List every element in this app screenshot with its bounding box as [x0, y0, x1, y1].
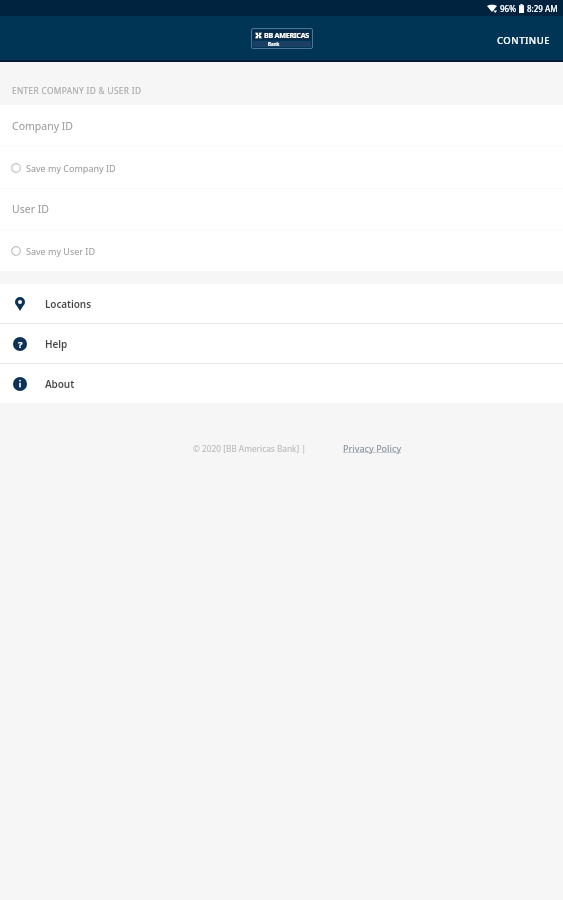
staticText: CONTINUE	[497, 34, 551, 47]
button[interactable]: Save my User ID	[0, 230, 563, 271]
button[interactable]: Save my Company ID	[0, 147, 563, 188]
staticText: Save my User ID	[26, 245, 95, 257]
staticText: Save my Company ID	[26, 162, 116, 174]
staticText: Bank	[268, 41, 280, 47]
button[interactable]: Company ID	[0, 105, 563, 146]
staticText: 96%	[500, 3, 516, 14]
staticText: BB AMERICAS	[264, 30, 309, 40]
staticText: ?	[18, 338, 23, 351]
button[interactable]: Locations	[0, 284, 563, 323]
staticText: Help	[45, 337, 68, 351]
staticText: Locations	[45, 297, 91, 311]
staticText: © 2020 [BB Americas Bank] |	[193, 443, 307, 454]
staticText: 8:29 AM	[527, 3, 558, 14]
button[interactable]: Help	[0, 324, 563, 363]
staticText: User ID	[12, 202, 49, 216]
button[interactable]: About	[0, 364, 563, 403]
staticText: Privacy Policy	[343, 442, 402, 454]
staticText: About	[45, 377, 75, 391]
button[interactable]: CONTINUE	[483, 20, 563, 57]
button[interactable]: User ID	[0, 189, 563, 229]
staticText: Company ID	[12, 119, 73, 133]
button[interactable]: Privacy Policy	[343, 442, 402, 454]
staticText: ENTER COMPANY ID & USER ID	[12, 85, 142, 96]
